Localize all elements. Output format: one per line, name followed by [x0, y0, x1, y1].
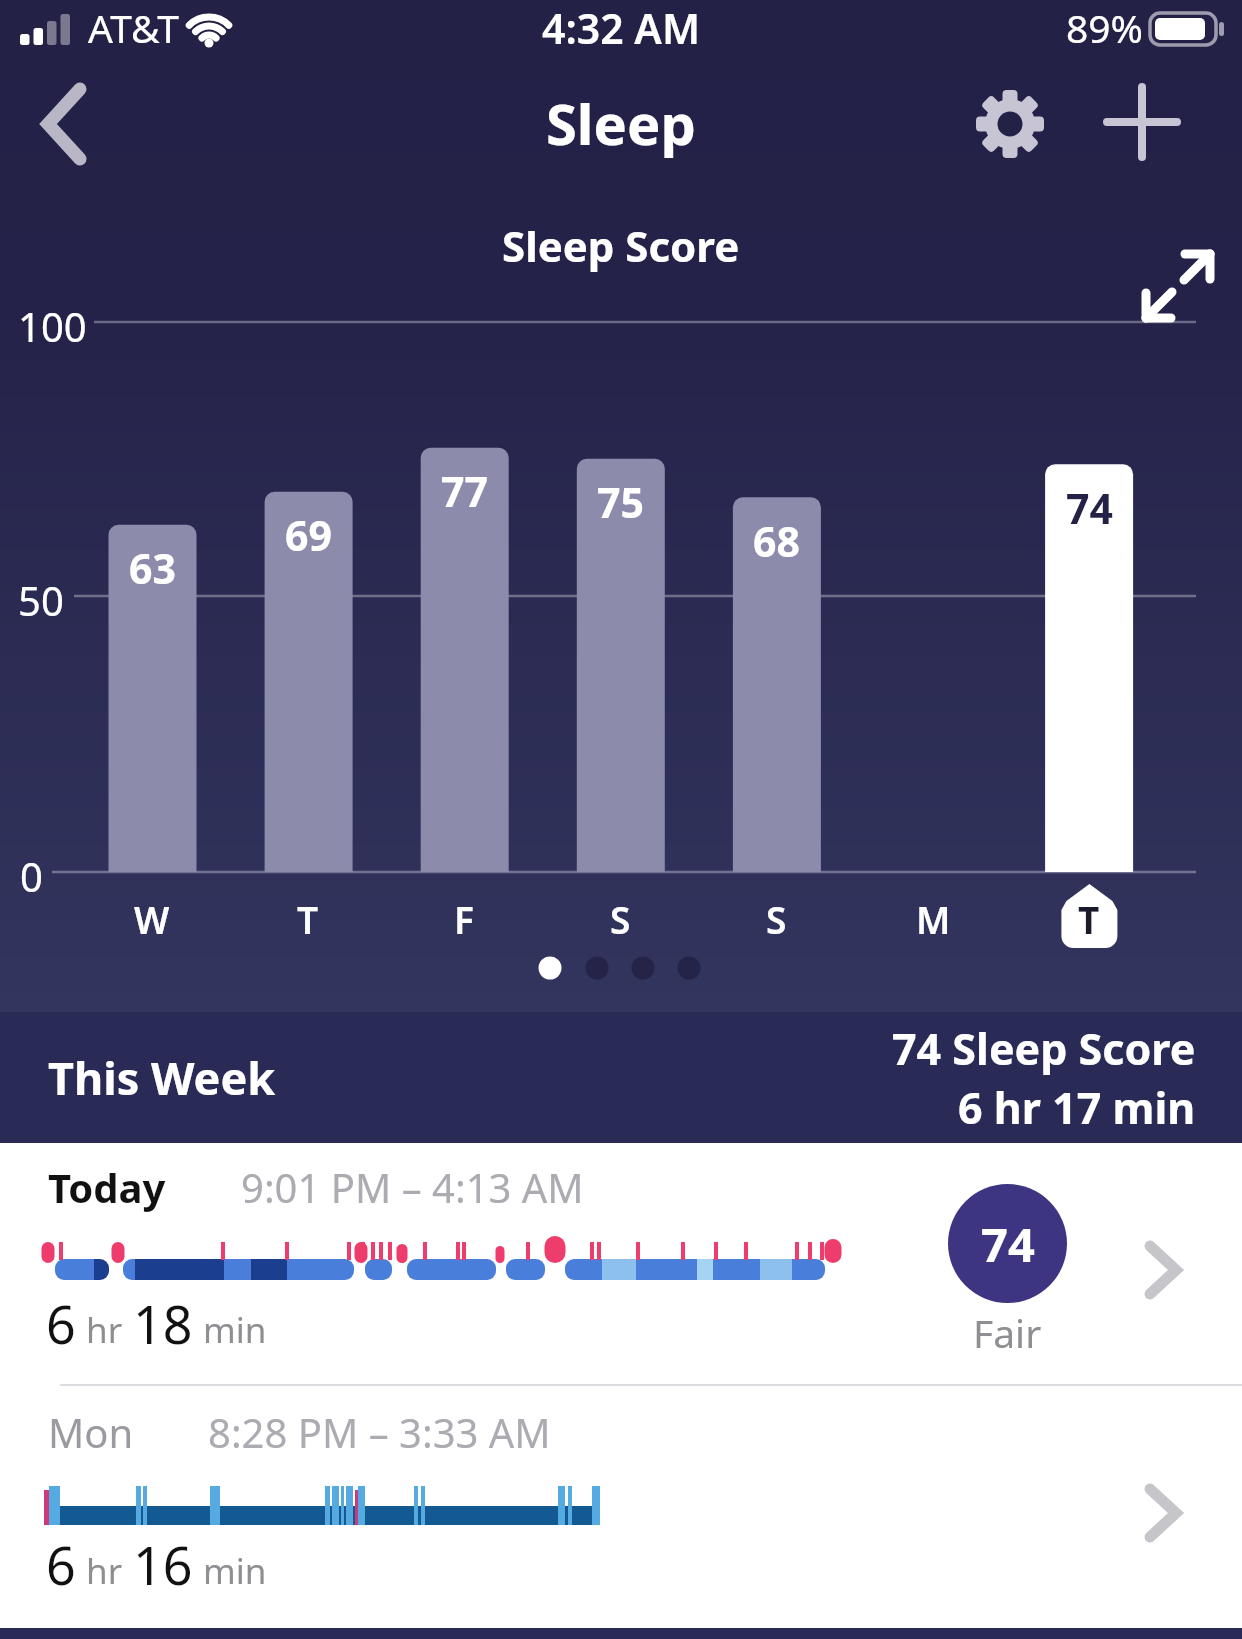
- staticText: 77: [441, 463, 488, 519]
- staticText: T: [1078, 894, 1100, 944]
- button[interactable]: [972, 86, 1048, 162]
- staticText: F: [454, 894, 474, 944]
- button[interactable]: [1138, 246, 1218, 326]
- staticText: Sleep: [546, 85, 696, 161]
- staticText: Sleep Score: [502, 217, 740, 274]
- staticText: hr: [86, 1547, 123, 1595]
- staticText: 74 Sleep Score: [892, 1019, 1196, 1078]
- staticText: 68: [753, 513, 800, 569]
- staticText: 100: [18, 299, 87, 353]
- staticText: T: [297, 894, 319, 944]
- staticText: 69: [285, 507, 332, 563]
- staticText: AT&T: [88, 1, 179, 54]
- staticText: 16: [133, 1529, 193, 1600]
- staticText: Today: [48, 1160, 166, 1214]
- staticText: 89%: [1066, 1, 1144, 54]
- staticText: 63: [129, 540, 176, 596]
- staticText: 18: [133, 1288, 193, 1359]
- staticText: 6: [46, 1529, 76, 1600]
- staticText: M: [916, 894, 951, 944]
- button[interactable]: Mon: [0, 1386, 1242, 1628]
- staticText: W: [134, 894, 170, 944]
- staticText: 75: [597, 474, 644, 530]
- staticText: S: [766, 894, 787, 944]
- button[interactable]: [28, 78, 100, 170]
- staticText: 4:32 AM: [542, 0, 700, 56]
- staticText: 8:28 PM – 3:33 AM: [208, 1405, 551, 1459]
- staticText: Fair: [973, 1306, 1042, 1359]
- button[interactable]: Today: [0, 1143, 1242, 1385]
- staticText: Mon: [48, 1405, 134, 1459]
- staticText: min: [203, 1306, 267, 1354]
- staticText: min: [203, 1547, 267, 1595]
- button[interactable]: [1102, 82, 1182, 162]
- staticText: 0: [20, 849, 43, 903]
- staticText: 50: [18, 573, 64, 627]
- staticText: 74: [1066, 480, 1113, 536]
- staticText: S: [610, 894, 631, 944]
- staticText: 74: [981, 1212, 1035, 1276]
- staticText: 6: [46, 1288, 76, 1359]
- staticText: 6 hr 17 min: [958, 1078, 1196, 1137]
- staticText: 9:01 PM – 4:13 AM: [241, 1160, 584, 1214]
- staticText: This Week: [48, 1047, 276, 1108]
- staticText: hr: [86, 1306, 123, 1354]
